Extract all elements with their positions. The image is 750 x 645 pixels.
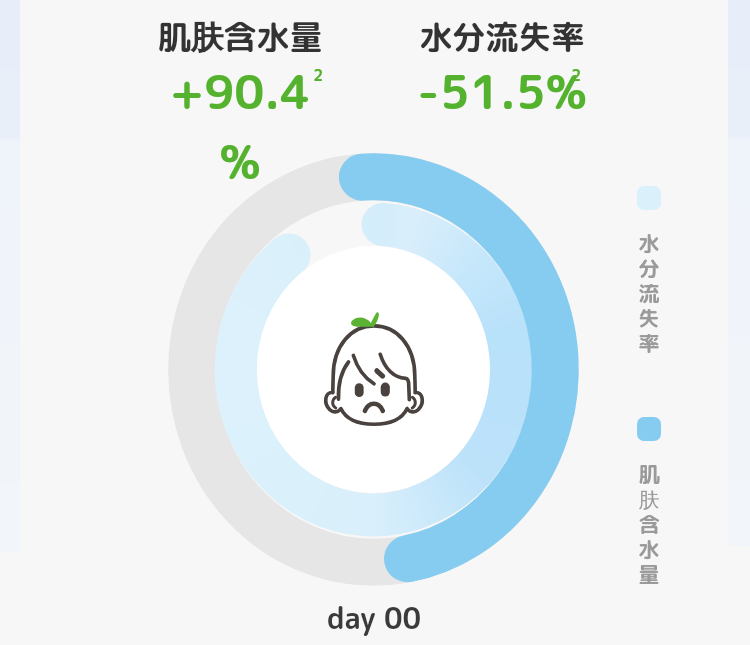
staticText: +90.4% (154, 58, 326, 194)
staticText: 肌肤含水量 (154, 14, 326, 60)
staticText: 2 (571, 64, 582, 86)
staticText: 肌 肤 含 水 量 (631, 459, 667, 589)
staticText: 2 (313, 64, 324, 86)
staticText: -51.5% (416, 58, 588, 124)
staticText: 水 分 流 失 率 (631, 228, 667, 358)
button[interactable]: 水分流失率 (631, 186, 667, 358)
staticText: 水分流失率 (416, 14, 588, 60)
button[interactable]: 肌肤含水量 (631, 417, 667, 589)
staticText: day 00 (292, 598, 456, 638)
